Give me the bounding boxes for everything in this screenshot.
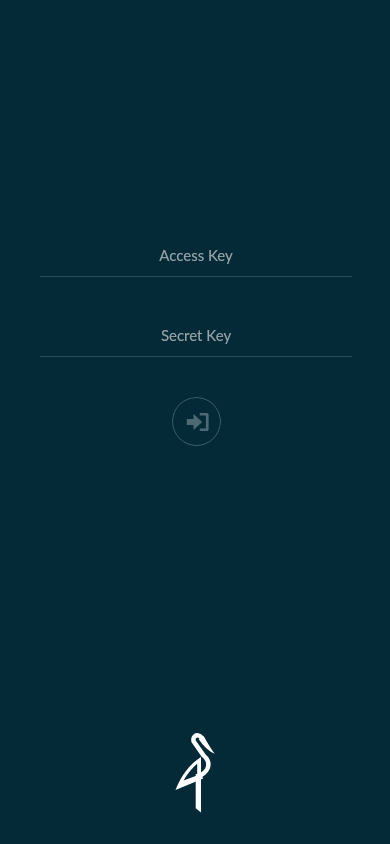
staticText: Access Key <box>40 246 352 264</box>
staticText: Secret Key <box>40 326 352 344</box>
button[interactable]: Access Key <box>40 240 352 277</box>
button[interactable]: Log In <box>172 397 221 446</box>
button[interactable]: Secret Key <box>40 320 352 357</box>
